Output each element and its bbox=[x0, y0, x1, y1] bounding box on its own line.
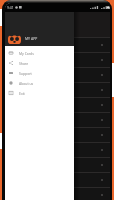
staticText: 9:41 bbox=[7, 5, 14, 10]
staticText: Support bbox=[19, 71, 32, 76]
button[interactable]: Share bbox=[5, 58, 74, 68]
staticText: MY APP bbox=[25, 36, 38, 41]
button[interactable]: Exit bbox=[5, 88, 74, 98]
staticText: Exit bbox=[19, 91, 25, 96]
staticText: About us bbox=[19, 81, 34, 86]
button[interactable]: About us bbox=[5, 78, 74, 88]
button[interactable]: My Cards bbox=[5, 48, 74, 58]
staticText: Share bbox=[19, 61, 29, 66]
button[interactable]: Support bbox=[5, 68, 74, 78]
staticText: My Cards bbox=[19, 51, 34, 56]
